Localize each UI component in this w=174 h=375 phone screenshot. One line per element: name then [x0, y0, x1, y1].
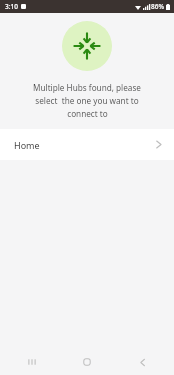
- staticText: 3:10: [5, 2, 18, 11]
- button[interactable]: Recents: [9, 349, 55, 375]
- staticText: connect to: [67, 108, 108, 119]
- button[interactable]: Home: [0, 129, 174, 160]
- staticText: select the one you want to: [35, 95, 139, 106]
- button[interactable]: Home: [64, 349, 110, 375]
- other: Connect: [73, 32, 101, 60]
- button[interactable]: Back: [119, 349, 165, 375]
- staticText: 86%: [151, 2, 164, 11]
- staticText: Multiple Hubs found, please: [33, 82, 141, 93]
- staticText: Home: [14, 139, 40, 151]
